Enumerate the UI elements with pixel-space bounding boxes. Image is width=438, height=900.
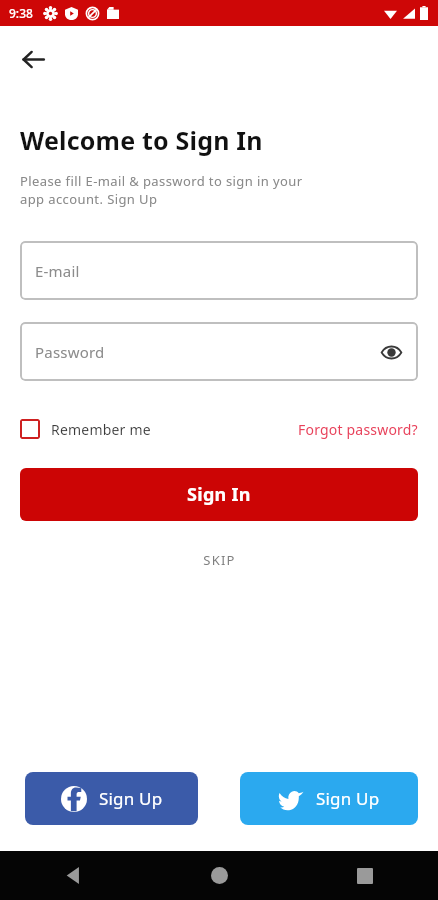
button[interactable]: Remember me: [20, 419, 151, 439]
button[interactable]: Sign In: [20, 468, 418, 521]
staticText: Sign In: [187, 482, 251, 507]
button[interactable]: SKIP: [183, 545, 256, 575]
staticText: Sign Up: [99, 787, 163, 810]
button[interactable]: Sign Up: [240, 772, 418, 825]
staticText: Sign Up: [316, 787, 380, 810]
button[interactable]: Recent apps: [292, 851, 438, 900]
button[interactable]: Home: [146, 851, 292, 900]
button[interactable]: Forgot password?: [298, 420, 418, 439]
button[interactable]: Sign Up: [25, 772, 198, 825]
staticText: Please fill E-mail & password to sign in…: [20, 172, 303, 208]
button[interactable]: Back: [12, 38, 54, 80]
staticText: SKIP: [203, 551, 236, 569]
button[interactable]: E-mail: [20, 241, 418, 300]
button[interactable]: Back: [0, 851, 146, 900]
staticText: E-mail: [35, 261, 80, 281]
staticText: Welcome to Sign In: [20, 123, 263, 157]
button[interactable]: Password: [20, 322, 418, 381]
staticText: 9:38: [9, 5, 33, 21]
button[interactable]: Show password: [372, 333, 410, 371]
staticText: Forgot password?: [298, 420, 418, 439]
staticText: Password: [35, 342, 105, 362]
staticText: Remember me: [51, 420, 151, 439]
